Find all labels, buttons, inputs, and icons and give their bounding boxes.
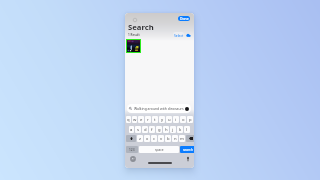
button[interactable]: l (184, 126, 190, 133)
button[interactable]: Share (186, 33, 191, 38)
button[interactable]: a (129, 126, 134, 133)
button[interactable]: g (156, 126, 162, 133)
button[interactable]: v (158, 135, 164, 142)
staticText: j (172, 127, 174, 133)
button[interactable]: Back (132, 17, 138, 23)
staticText: u (168, 117, 171, 123)
staticText: n (174, 136, 177, 142)
staticText: 123 (129, 148, 135, 152)
button[interactable]: h (163, 126, 169, 133)
staticText: t (154, 117, 156, 123)
staticText: v (160, 136, 163, 142)
staticText: l (186, 127, 188, 133)
button[interactable]: Select (173, 32, 184, 37)
button[interactable]: i (173, 116, 179, 123)
staticText: w (133, 117, 137, 123)
button[interactable]: s (135, 126, 141, 133)
button[interactable]: c (151, 135, 157, 142)
button[interactable]: 123 (126, 146, 138, 153)
staticText: q (127, 117, 130, 123)
staticText: d (144, 127, 147, 133)
button[interactable]: y (159, 116, 165, 123)
button[interactable]: w (132, 116, 137, 123)
staticText: e (140, 117, 143, 123)
staticText: h (165, 127, 168, 133)
button[interactable]: search (180, 146, 194, 153)
button[interactable]: t (152, 116, 158, 123)
button[interactable]: m (179, 135, 185, 142)
staticText: k (179, 127, 182, 133)
button[interactable]: x (144, 135, 150, 142)
staticText: Select (174, 33, 184, 37)
staticText: s (137, 127, 140, 133)
button[interactable]: k (177, 126, 183, 133)
staticText: z (139, 136, 141, 142)
staticText: Search (128, 22, 154, 32)
staticText: a (130, 127, 133, 133)
button[interactable]: q (126, 116, 131, 123)
staticText: 1 Result (128, 33, 140, 37)
staticText: space (155, 148, 164, 152)
button[interactable]: u (166, 116, 172, 123)
button[interactable]: z (137, 135, 143, 142)
button[interactable]: space (139, 146, 179, 153)
staticText: search (183, 148, 193, 152)
button[interactable]: Emoji (130, 156, 136, 162)
staticText: y (161, 117, 164, 123)
button[interactable]: o (180, 116, 186, 123)
button[interactable]: r (145, 116, 151, 123)
staticText: f (151, 127, 153, 133)
staticText: Done (180, 16, 189, 21)
button[interactable]: p (187, 116, 193, 123)
button[interactable]: Done (178, 16, 190, 21)
button[interactable]: b (165, 135, 171, 142)
staticText: p (189, 117, 192, 123)
staticText: m (180, 136, 184, 142)
button[interactable]: d (142, 126, 148, 133)
staticText: g (158, 127, 161, 133)
staticText: r (147, 117, 149, 123)
button[interactable]: Delete (186, 135, 194, 142)
staticText: c (153, 136, 156, 142)
button[interactable]: Shift (126, 135, 136, 142)
staticText: x (146, 136, 149, 142)
button[interactable]: Walking around with dinosaurs (127, 104, 191, 113)
staticText: i (175, 117, 177, 123)
staticText: o (182, 117, 185, 123)
button[interactable]: n (172, 135, 178, 142)
button[interactable]: Dictate (185, 156, 191, 162)
button[interactable] (127, 40, 140, 52)
button[interactable]: e (138, 116, 144, 123)
button[interactable]: f (149, 126, 155, 133)
staticText: b (167, 136, 170, 142)
button[interactable]: j (170, 126, 176, 133)
staticText: Walking around with dinosaurs (134, 106, 184, 111)
